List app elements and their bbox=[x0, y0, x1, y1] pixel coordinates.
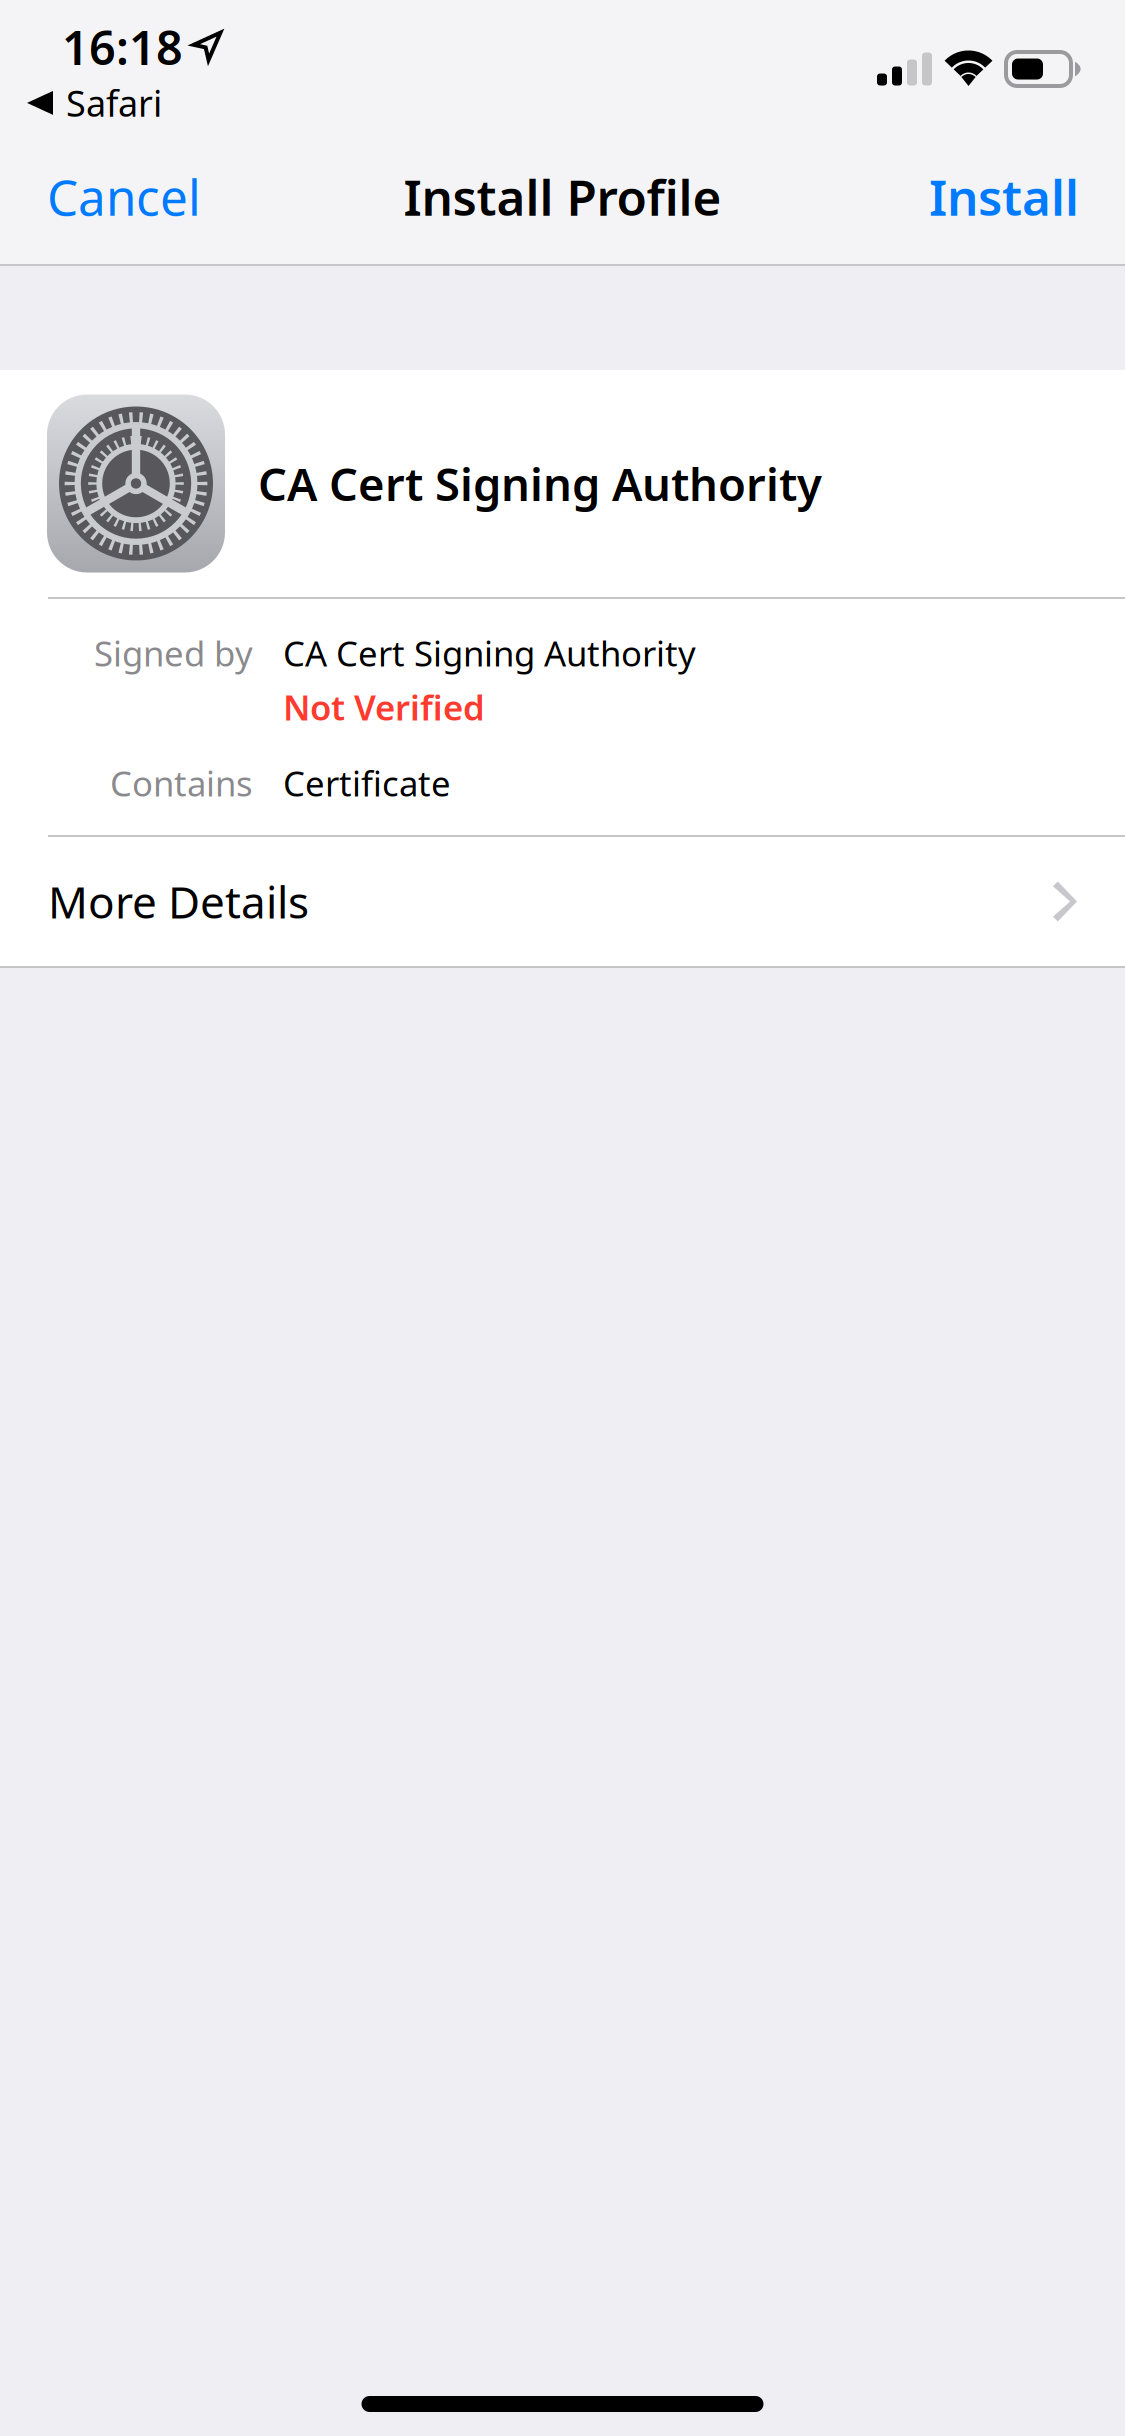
staticText: Install bbox=[929, 164, 1079, 229]
staticText: Contains bbox=[110, 760, 253, 806]
button[interactable]: More Details bbox=[0, 837, 1125, 966]
staticText: Signed by bbox=[94, 630, 253, 676]
staticText: More Details bbox=[48, 872, 309, 931]
staticText: CA Cert Signing Authority bbox=[258, 453, 822, 514]
staticText: Cancel bbox=[47, 164, 201, 229]
button[interactable]: Cancel bbox=[39, 158, 209, 247]
button[interactable]: Install bbox=[921, 158, 1087, 247]
staticText: CA Cert Signing Authority bbox=[283, 630, 696, 676]
button[interactable]: Safari bbox=[27, 75, 172, 131]
staticText: Certificate bbox=[283, 760, 451, 806]
staticText: Safari bbox=[66, 79, 162, 127]
staticText: Not Verified bbox=[283, 684, 485, 730]
staticText: 16:18 bbox=[62, 16, 183, 78]
staticText: Install Profile bbox=[403, 164, 721, 229]
